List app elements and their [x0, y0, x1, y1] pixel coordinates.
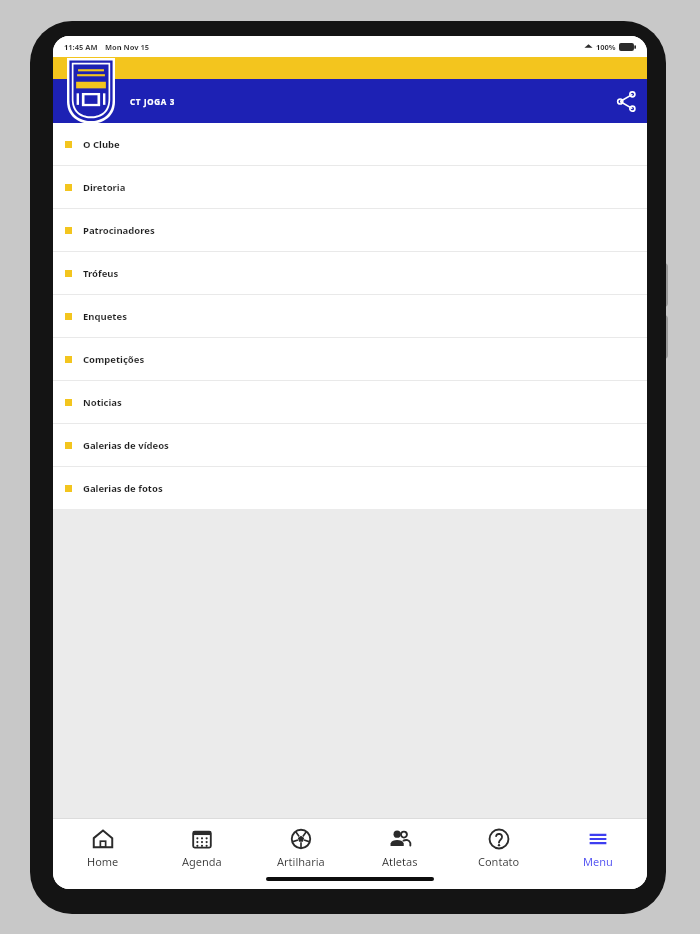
button[interactable]: Menu: [548, 819, 647, 877]
staticText: O Clube: [83, 138, 120, 151]
staticText: Home: [87, 854, 119, 869]
button[interactable]: Trófeus: [53, 252, 647, 294]
button[interactable]: Galerias de vídeos: [53, 424, 647, 466]
button[interactable]: O Clube: [53, 123, 647, 165]
button[interactable]: Diretoria: [53, 166, 647, 208]
staticText: 11:45 AM: [64, 42, 98, 52]
button[interactable]: Enquetes: [53, 295, 647, 337]
staticText: Galerias de fotos: [83, 482, 163, 495]
staticText: Atletas: [382, 854, 418, 869]
button[interactable]: Contato: [449, 819, 548, 877]
button[interactable]: Galerias de fotos: [53, 467, 647, 509]
staticText: Contato: [478, 854, 520, 869]
button[interactable]: Patrocinadores: [53, 209, 647, 251]
staticText: Noticias: [83, 396, 122, 409]
staticText: Mon Nov 15: [105, 42, 150, 52]
staticText: Artilharia: [277, 854, 325, 869]
staticText: Enquetes: [83, 310, 127, 323]
staticText: Diretoria: [83, 181, 126, 194]
staticText: 100%: [596, 42, 616, 52]
button[interactable]: Noticias: [53, 381, 647, 423]
button[interactable]: CT Joga 3 logo: [67, 58, 115, 124]
button[interactable]: Atletas: [350, 819, 449, 877]
staticText: Trófeus: [83, 267, 119, 280]
button[interactable]: Home: [53, 819, 152, 877]
button[interactable]: Agenda: [152, 819, 251, 877]
staticText: CT JOGA 3: [130, 96, 176, 107]
staticText: Agenda: [182, 854, 222, 869]
staticText: Galerias de vídeos: [83, 439, 169, 452]
staticText: Competições: [83, 353, 145, 366]
button[interactable]: Artilharia: [251, 819, 350, 877]
staticText: Patrocinadores: [83, 224, 155, 237]
button[interactable]: Competições: [53, 338, 647, 380]
staticText: Menu: [583, 854, 613, 869]
button[interactable]: Share: [605, 80, 647, 122]
